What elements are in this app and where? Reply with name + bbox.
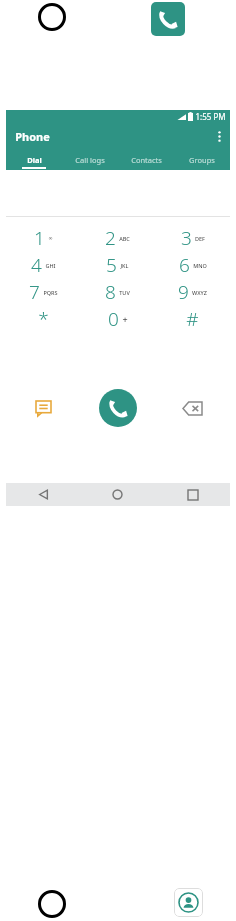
- button[interactable]: 7: [6, 278, 80, 305]
- staticText: 9: [178, 279, 189, 305]
- staticText: ∞: [48, 235, 53, 241]
- button[interactable]: 4: [6, 251, 80, 278]
- button[interactable]: Send message: [6, 388, 80, 428]
- button[interactable]: #: [155, 305, 230, 332]
- staticText: GHI: [45, 262, 56, 269]
- button[interactable]: Home: [80, 483, 155, 506]
- button[interactable]: 9: [155, 278, 230, 305]
- staticText: Contacts: [131, 155, 162, 165]
- button[interactable]: 0: [80, 305, 155, 332]
- button[interactable]: Call logs: [62, 149, 118, 170]
- staticText: Groups: [189, 155, 215, 165]
- button[interactable]: Call: [99, 389, 137, 427]
- staticText: 2: [105, 225, 116, 251]
- button[interactable]: 1: [6, 224, 80, 251]
- button[interactable]: 6: [155, 251, 230, 278]
- staticText: PQRS: [43, 289, 58, 296]
- staticText: 1:55 PM: [195, 111, 226, 122]
- staticText: 8: [105, 279, 116, 305]
- button[interactable]: Dial: [6, 149, 62, 170]
- staticText: 0: [108, 306, 119, 332]
- staticText: TUV: [119, 289, 130, 296]
- staticText: JKL: [120, 262, 129, 269]
- staticText: #: [186, 306, 199, 332]
- button[interactable]: *: [6, 305, 80, 332]
- button[interactable]: Groups: [174, 149, 230, 170]
- staticText: Phone: [15, 129, 50, 144]
- staticText: MNO: [193, 262, 207, 269]
- button[interactable]: Backspace: [155, 388, 230, 428]
- button[interactable]: Phone app: [151, 2, 185, 36]
- staticText: 4: [31, 252, 42, 278]
- staticText: 1: [34, 225, 45, 251]
- button[interactable]: 2: [80, 224, 155, 251]
- staticText: +: [122, 313, 128, 325]
- button[interactable]: 8: [80, 278, 155, 305]
- staticText: 6: [179, 252, 190, 278]
- staticText: 5: [106, 252, 117, 278]
- button[interactable]: 5: [80, 251, 155, 278]
- staticText: 7: [29, 279, 40, 305]
- button[interactable]: More options: [208, 123, 230, 149]
- staticText: 3: [181, 225, 192, 251]
- button[interactable]: Circle: [38, 3, 66, 31]
- staticText: *: [38, 306, 49, 332]
- button[interactable]: 3: [155, 224, 230, 251]
- staticText: DEF: [195, 235, 205, 242]
- staticText: ABC: [119, 235, 130, 242]
- staticText: WXYZ: [192, 289, 207, 296]
- button[interactable]: Back: [6, 483, 80, 506]
- staticText: Dial: [27, 155, 42, 165]
- button[interactable]: Contacts: [118, 149, 174, 170]
- button[interactable]: Circle: [38, 890, 66, 918]
- staticText: Call logs: [75, 155, 105, 165]
- button[interactable]: Contacts: [174, 888, 203, 917]
- button[interactable]: Recent apps: [155, 483, 230, 506]
